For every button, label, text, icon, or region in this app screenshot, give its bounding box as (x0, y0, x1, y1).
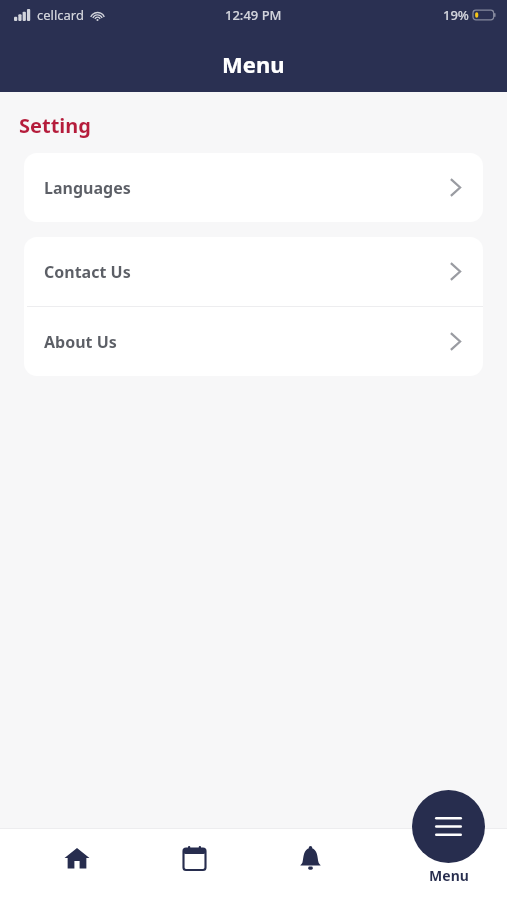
staticText: Menu (429, 866, 469, 885)
button[interactable]: About Us (24, 307, 483, 376)
button[interactable]: Home (37, 828, 117, 900)
staticText: Setting (19, 112, 91, 139)
staticText: 12:49 PM (225, 6, 282, 24)
staticText: About Us (44, 331, 117, 353)
button[interactable]: Languages (24, 153, 483, 222)
staticText: Menu (222, 49, 285, 79)
staticText: 19% (443, 6, 469, 24)
button[interactable]: Notifications (270, 828, 350, 900)
staticText: Languages (44, 177, 131, 199)
button[interactable]: Contact Us (24, 237, 483, 306)
button[interactable]: Calendar (154, 828, 234, 900)
staticText: Contact Us (44, 261, 131, 283)
staticText: cellcard (37, 6, 84, 24)
button[interactable]: Menu (412, 790, 485, 885)
